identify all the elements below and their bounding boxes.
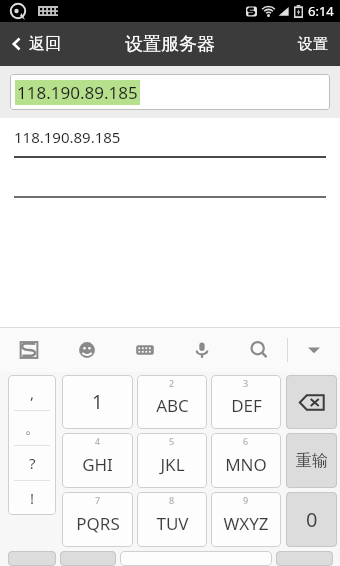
staticText: ?: [29, 453, 36, 473]
button[interactable]: 3: [211, 375, 281, 429]
staticText: ,: [30, 383, 35, 403]
staticText: 118.190.89.185: [14, 127, 121, 147]
staticText: 设置服务器: [125, 33, 215, 56]
staticText: 重输: [296, 451, 328, 471]
staticText: 。: [25, 419, 40, 438]
staticText: 6: [243, 435, 249, 447]
button[interactable]: 8: [137, 492, 207, 547]
button[interactable]: Hide keyboard: [288, 328, 340, 372]
button[interactable]: 0: [286, 492, 337, 547]
button[interactable]: Voice input: [173, 328, 230, 372]
button[interactable]: Keyboard layout: [116, 328, 173, 372]
button[interactable]: 5: [137, 433, 207, 488]
button[interactable]: Emoji: [58, 328, 116, 372]
staticText: 返回: [29, 34, 61, 54]
button[interactable]: 返回: [0, 22, 73, 66]
button[interactable]: [60, 551, 116, 566]
staticText: 9: [243, 494, 249, 506]
button[interactable]: 118.190.89.185: [10, 74, 330, 110]
button[interactable]: 4: [62, 433, 133, 488]
button[interactable]: Sogou input: [0, 328, 58, 372]
staticText: !: [30, 488, 35, 508]
staticText: WXYZ: [223, 512, 269, 535]
button[interactable]: 重输: [286, 433, 337, 488]
staticText: 4: [95, 435, 101, 447]
staticText: 6:14: [308, 2, 334, 20]
button[interactable]: 7: [62, 492, 133, 547]
button[interactable]: 1: [62, 375, 133, 429]
staticText: 7: [95, 494, 101, 506]
staticText: 3: [243, 377, 249, 389]
staticText: TUV: [156, 512, 189, 535]
button[interactable]: Space: [120, 551, 272, 566]
staticText: JKL: [160, 453, 185, 476]
button[interactable]: 设置: [286, 22, 340, 66]
staticText: MNO: [225, 453, 267, 476]
staticText: GHI: [82, 453, 113, 476]
button[interactable]: Delete: [286, 375, 337, 429]
button[interactable]: 2: [137, 375, 207, 429]
staticText: 1: [92, 389, 103, 415]
staticText: 0: [306, 506, 318, 533]
button[interactable]: 118.190.89.185: [0, 118, 340, 156]
button[interactable]: ,: [8, 375, 56, 515]
button[interactable]: [8, 551, 56, 566]
button[interactable]: [276, 551, 333, 566]
button[interactable]: Search: [230, 328, 287, 372]
staticText: ABC: [156, 394, 189, 417]
button[interactable]: 9: [211, 492, 281, 547]
staticText: 设置: [298, 35, 328, 54]
button[interactable]: 6: [211, 433, 281, 488]
staticText: 118.190.89.185: [17, 81, 138, 104]
staticText: 5: [169, 435, 175, 447]
staticText: PQRS: [76, 512, 120, 535]
staticText: 8: [169, 494, 175, 506]
staticText: DEF: [231, 394, 262, 417]
staticText: 2: [169, 377, 175, 389]
